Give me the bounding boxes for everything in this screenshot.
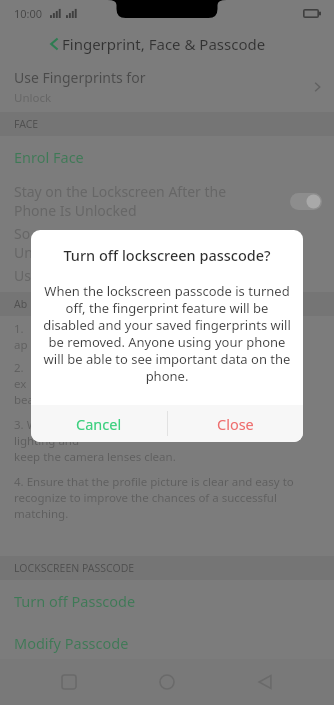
staticText: Un — [14, 243, 33, 258]
staticText: Turn off Passcode — [14, 591, 136, 611]
staticText: Unlock — [14, 90, 52, 106]
staticText: When the lockscreen passcode is turned o… — [42, 282, 292, 385]
staticText: 2. — [14, 360, 27, 376]
staticText: FACE — [14, 117, 39, 131]
staticText: 3. When enrolling, avoid environments wi… — [14, 417, 320, 465]
staticText: ap — [14, 337, 28, 353]
staticText: LOCKSCREEN PASSCODE — [14, 561, 135, 575]
button[interactable]: Back — [0, 26, 334, 62]
button[interactable]: So — [0, 224, 334, 258]
staticText: Use Fingerprints for — [14, 68, 146, 87]
staticText: Fingerprint, Face & Passcode — [62, 34, 266, 54]
button[interactable]: Cancel — [31, 405, 167, 442]
staticText: Turn off lockscreen passcode? — [63, 245, 271, 265]
staticText: So — [14, 224, 31, 243]
staticText: Cancel — [76, 414, 122, 434]
staticText: Ab — [14, 297, 28, 311]
button[interactable]: Use Fingerprints for — [0, 62, 334, 112]
staticText: ex — [14, 376, 27, 392]
staticText: 10:00 — [14, 6, 43, 21]
staticText: Phone Is Unlocked — [14, 201, 137, 220]
staticText: 4. Ensure that the profile picture is cl… — [14, 474, 320, 522]
staticText: Stay on the Lockscreen After the — [14, 182, 227, 201]
staticText: beard or heavy make-up. — [14, 392, 149, 408]
button[interactable]: Us — [0, 258, 334, 292]
staticText: Close — [217, 414, 254, 434]
button[interactable]: Modify Passcode — [0, 622, 334, 664]
button[interactable]: Stay on the Lockscreen After the — [0, 178, 334, 224]
button[interactable]: Close — [167, 405, 303, 442]
button[interactable]: Enrol Face — [0, 136, 334, 178]
staticText: Enrol Face — [14, 147, 84, 167]
staticText: 1. — [14, 321, 27, 337]
staticText: Us — [14, 266, 31, 285]
button[interactable]: Turn off Passcode — [0, 580, 334, 622]
staticText: Modify Passcode — [14, 633, 129, 653]
